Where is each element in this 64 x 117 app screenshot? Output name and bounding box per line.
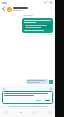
- button[interactable]: Send: [49, 80, 53, 84]
- button[interactable]: [22, 18, 53, 33]
- button[interactable]: [2, 91, 53, 104]
- button[interactable]: [26, 79, 48, 84]
- button[interactable]: Recent apps: [3, 110, 8, 115]
- button[interactable]: Formatting: [2, 87, 6, 91]
- button[interactable]: Back: [1, 6, 7, 12]
- button[interactable]: Hide keyboard: [47, 110, 52, 115]
- button[interactable]: More options: [48, 6, 54, 12]
- button[interactable]: Back: [18, 110, 23, 115]
- button[interactable]: [44, 99, 51, 102]
- button[interactable]: [35, 99, 42, 102]
- button[interactable]: Home: [32, 110, 37, 115]
- button[interactable]: Attach file: [49, 87, 53, 91]
